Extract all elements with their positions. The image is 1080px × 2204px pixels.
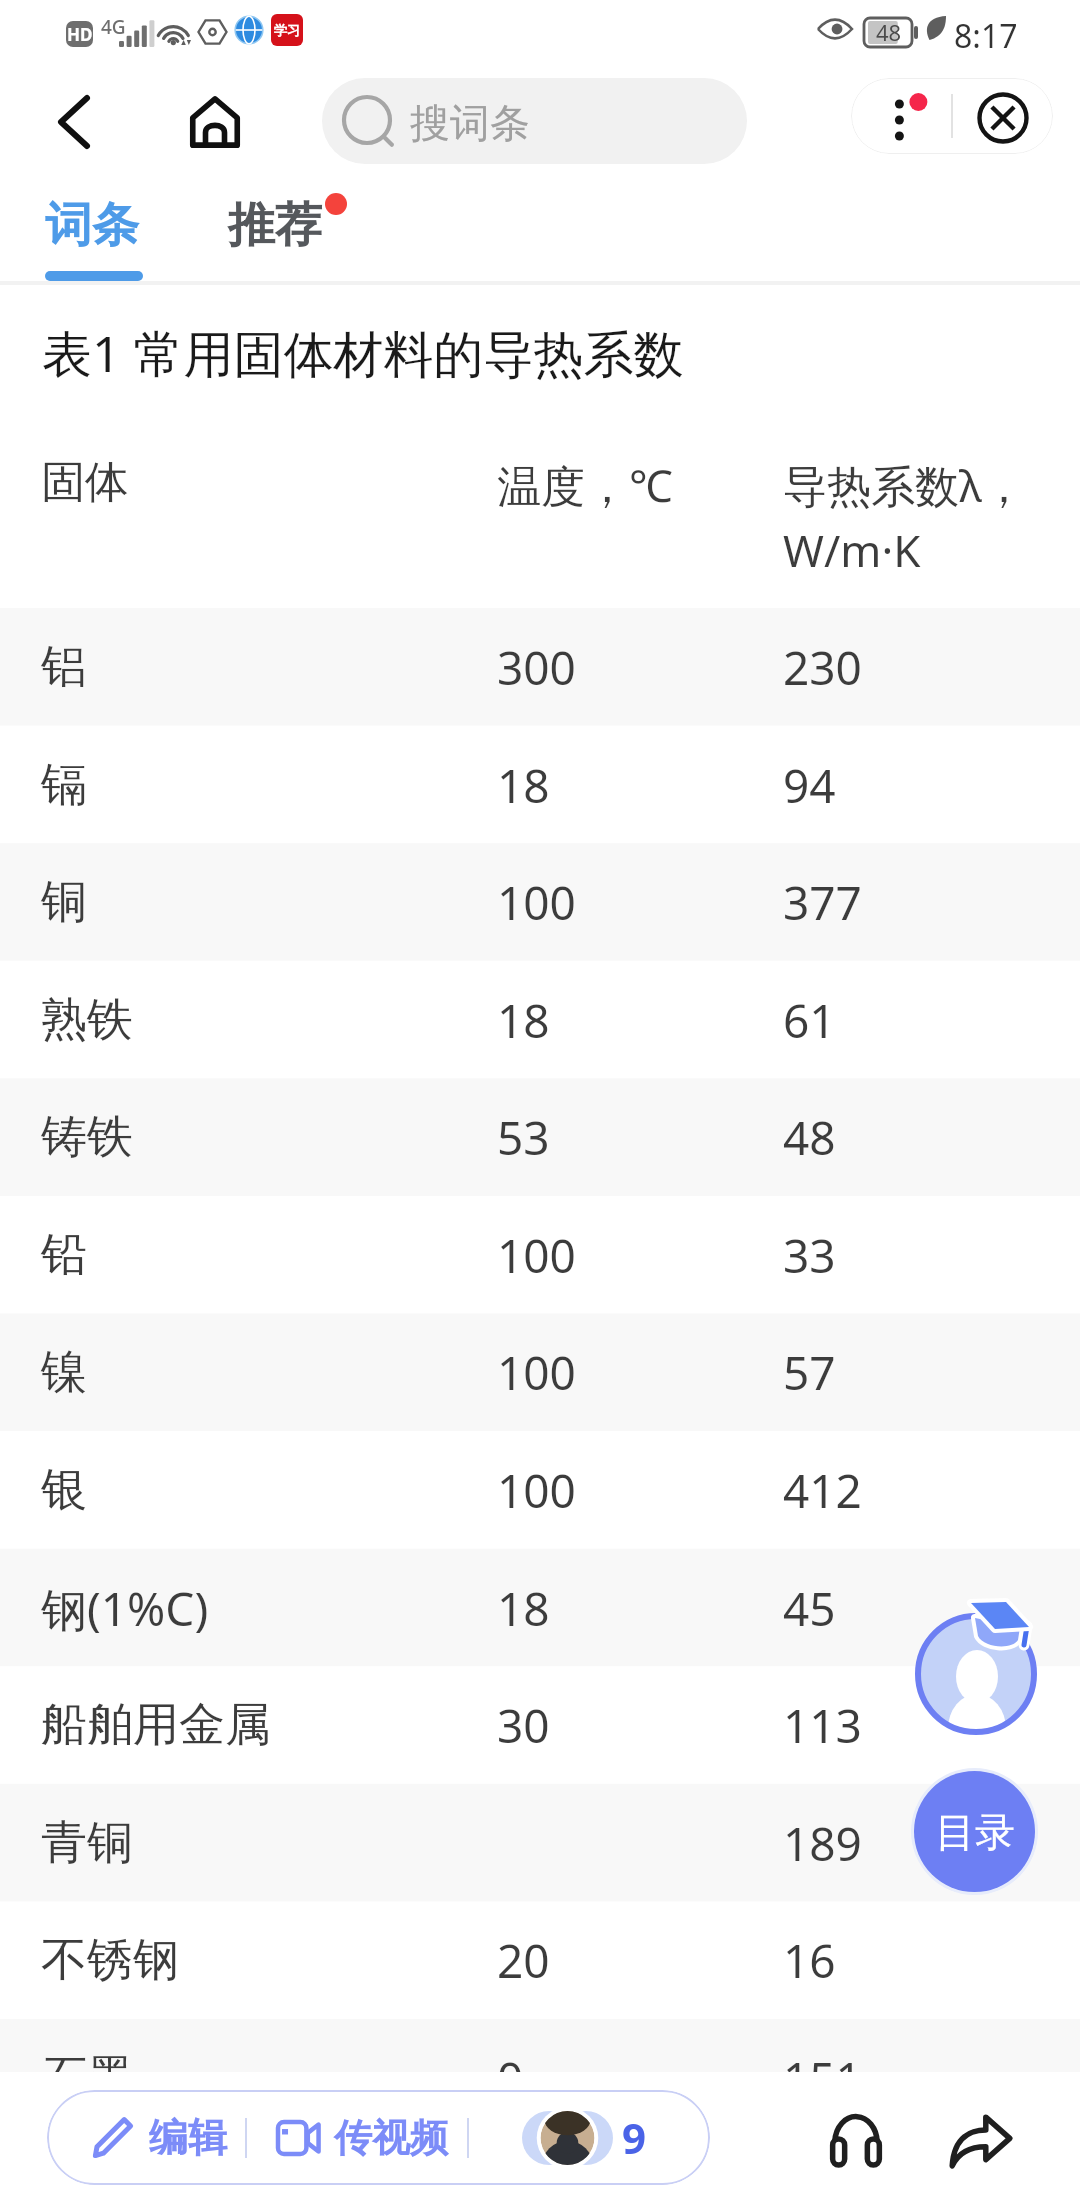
staticText: 表1 常用固体材料的导热系数 [42,319,684,387]
staticText: 94 [783,754,836,817]
button[interactable]: 镉 [0,726,1080,844]
staticText: 151 [783,2047,862,2110]
staticText: 石墨 [41,2049,133,2107]
staticText: 57 [783,1341,836,1404]
staticText: 镍 [41,1343,87,1401]
button[interactable]: 编辑 [47,2090,246,2185]
staticText: 100 [497,871,576,934]
staticText: 100 [497,1459,576,1522]
staticText: 目录 [935,1807,1015,1857]
staticText: 铅 [41,1226,87,1284]
staticText: 20 [497,1929,550,1992]
staticText: 导热系数λ， W/m·K [783,455,1026,580]
button[interactable]: 9 [469,2090,710,2185]
staticText: 铸铁 [41,1108,133,1166]
button[interactable]: 银 [0,1431,1080,1549]
staticText: HD [67,23,93,46]
button[interactable]: Back [30,79,116,165]
button[interactable]: 铜 [0,843,1080,961]
staticText: 113 [783,1694,862,1757]
button[interactable]: 钢(1%C) [0,1549,1080,1667]
button[interactable]: 不锈钢 [0,1901,1080,2019]
button[interactable]: 词条 [45,186,143,272]
button[interactable]: Share [931,2090,1031,2190]
button[interactable]: 石墨 [0,2019,1080,2137]
button[interactable]: 搜词条 [322,78,747,164]
staticText: 词条 [45,196,139,255]
staticText: 8:17 [954,14,1018,58]
button[interactable]: 船舶用金属 [0,1666,1080,1784]
button[interactable]: 熟铁 [0,961,1080,1079]
staticText: 搜词条 [410,98,530,148]
staticText: 船舶用金属 [41,1696,271,1754]
staticText: 48 [876,17,902,47]
staticText: 48 [783,1106,836,1169]
staticText: 100 [497,1341,576,1404]
button[interactable]: Listen [806,2090,906,2190]
staticText: 银 [41,1461,87,1519]
staticText: 推荐 [228,196,322,255]
button[interactable]: Close [953,78,1053,154]
staticText: 镉 [41,756,87,814]
staticText: 18 [497,989,550,1052]
button[interactable]: 铅 [0,1196,1080,1314]
button[interactable]: 目录 [914,1771,1035,1892]
staticText: 100 [497,1224,576,1287]
staticText: 铜 [41,873,87,931]
staticText: 学习 [274,22,300,38]
staticText: 钢(1%C) [41,1577,209,1640]
staticText: 61 [783,989,836,1052]
button[interactable]: 青铜 [0,1784,1080,1902]
staticText: 53 [497,1106,550,1169]
staticText: 编辑 [149,2113,227,2162]
staticText: 青铜 [41,1814,133,1872]
button[interactable]: 传视频 [247,2090,465,2185]
button[interactable]: 铸铁 [0,1078,1080,1196]
staticText: 300 [497,636,576,699]
staticText: 189 [783,1812,862,1875]
staticText: 温度，℃ [497,455,673,515]
staticText: 固体 [41,455,129,510]
button[interactable]: 推荐 [228,186,326,272]
staticText: 230 [783,636,862,699]
staticText: 传视频 [334,2114,448,2162]
button[interactable]: 镍 [0,1313,1080,1431]
staticText: 45 [783,1577,836,1640]
staticText: 33 [783,1224,836,1287]
staticText: 18 [497,754,550,817]
staticText: 熟铁 [41,991,133,1049]
staticText: 18 [497,1577,550,1640]
staticText: 377 [783,871,862,934]
staticText: 铝 [41,638,87,696]
staticText: 不锈钢 [41,1931,179,1989]
staticText: 412 [783,1459,862,1522]
button[interactable]: 铝 [0,608,1080,726]
staticText: 16 [783,1929,836,1992]
staticText: 4G [101,14,126,40]
staticText: 30 [497,1694,550,1757]
button[interactable]: Profile [908,1588,1060,1740]
staticText: 0 [497,2047,524,2110]
button[interactable]: More options [851,78,951,154]
staticText: 9 [622,2109,647,2166]
button[interactable]: Home [172,79,258,165]
